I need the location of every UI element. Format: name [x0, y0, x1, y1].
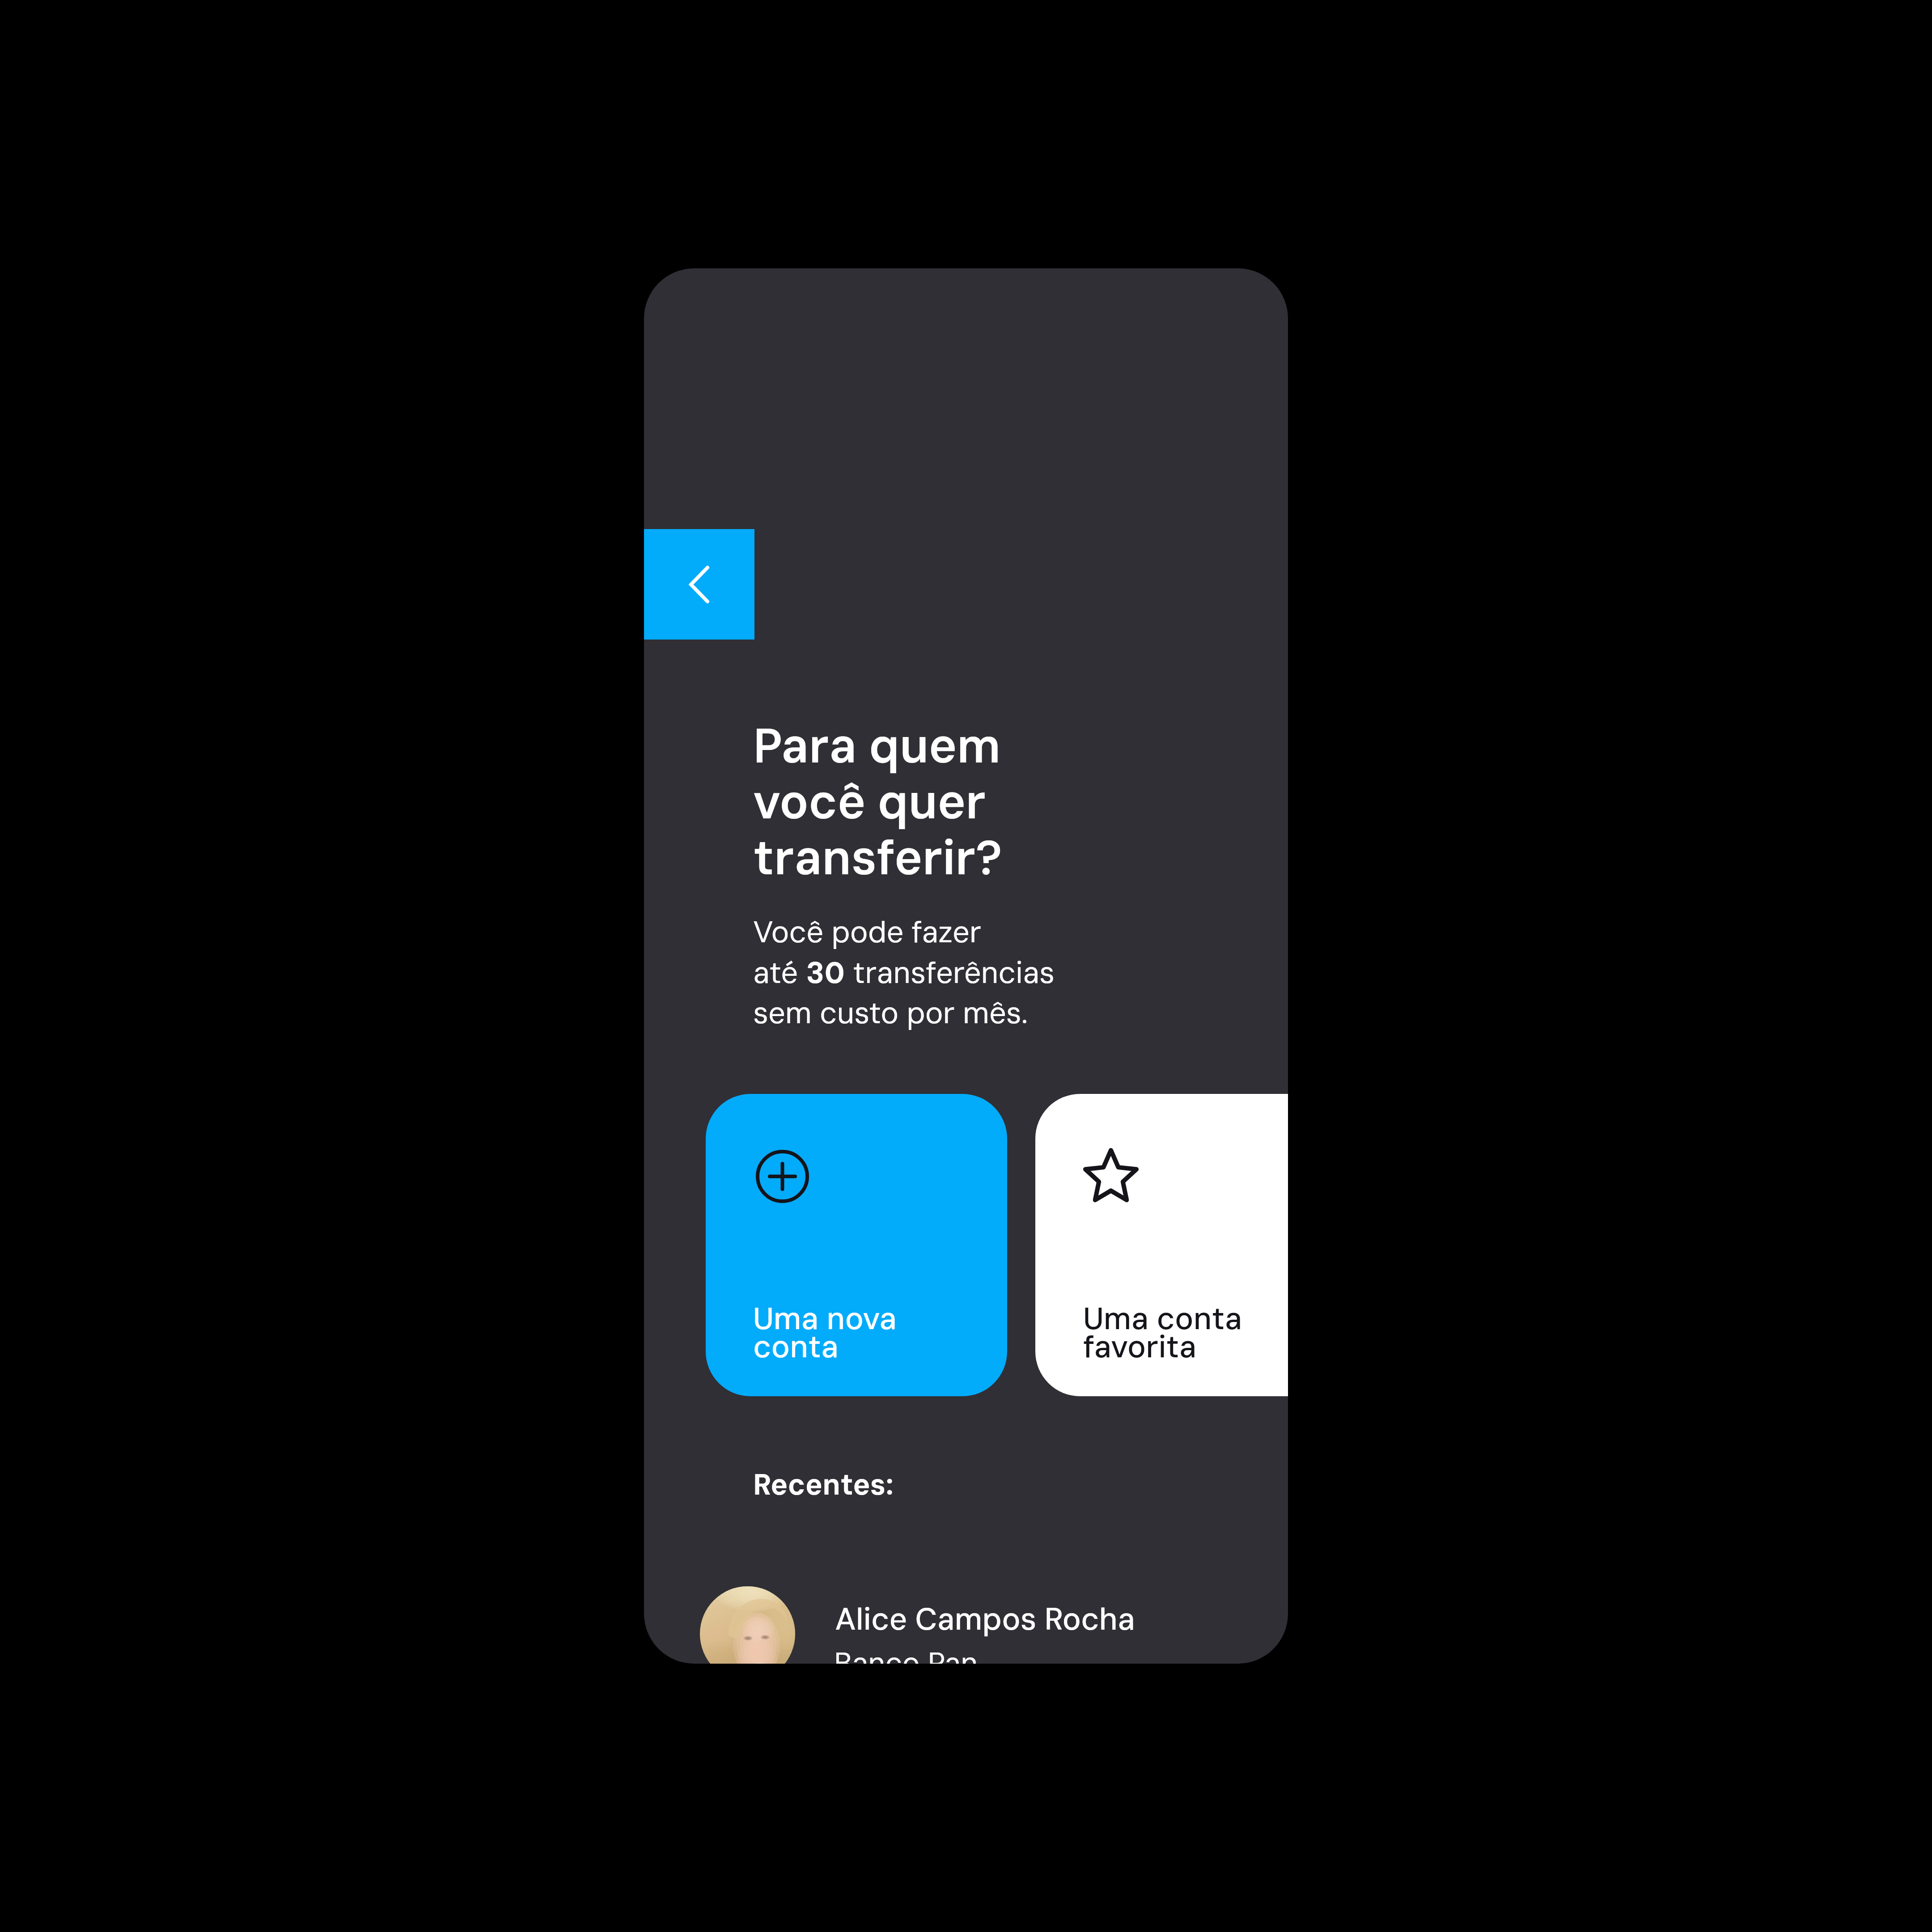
button[interactable]: Alice Campos Rocha	[644, 1565, 1288, 1664]
staticText: Uma conta favorita	[1083, 1299, 1242, 1367]
staticText: Para quem você quer transferir?	[753, 715, 1003, 889]
staticText: Você pode fazer até 30 transferências se…	[753, 913, 1055, 1032]
staticText: Recentes:	[753, 1466, 894, 1504]
button[interactable]: Uma conta favorita	[1035, 1094, 1288, 1396]
button[interactable]: Uma nova conta	[706, 1094, 1007, 1396]
staticText: Alice Campos Rocha	[835, 1599, 1135, 1640]
button[interactable]: Voltar	[644, 529, 754, 640]
staticText: Banco Pan	[834, 1644, 978, 1664]
staticText: Uma nova conta	[753, 1299, 897, 1367]
